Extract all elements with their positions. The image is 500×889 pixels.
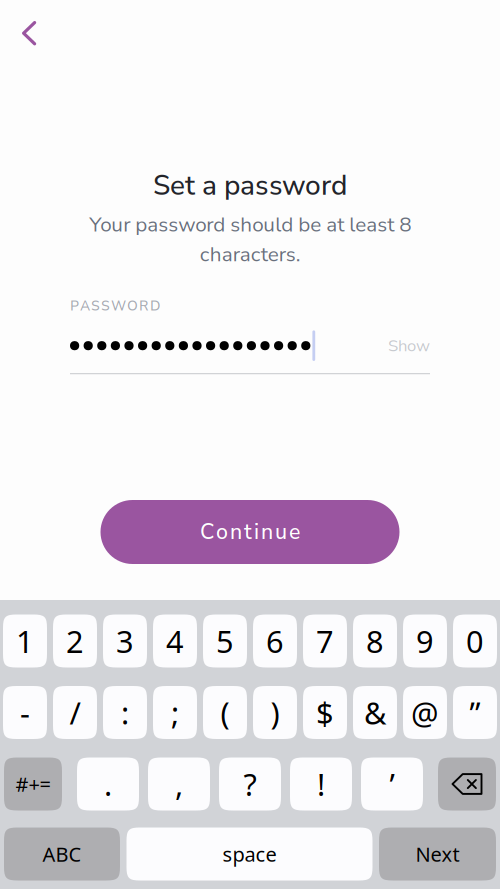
- staticText: ABC: [42, 840, 81, 868]
- button[interactable]: -: [3, 686, 47, 739]
- staticText: &: [364, 692, 386, 733]
- staticText: 5: [216, 620, 234, 662]
- button[interactable]: 4: [153, 614, 197, 667]
- staticText: #+=: [15, 770, 50, 798]
- button[interactable]: 2: [53, 614, 97, 667]
- button[interactable]: /: [53, 686, 97, 739]
- staticText: (: [220, 692, 229, 733]
- button[interactable]: space: [126, 827, 372, 880]
- button[interactable]: Delete: [438, 757, 496, 810]
- staticText: !: [317, 763, 325, 805]
- button[interactable]: (: [203, 686, 247, 739]
- staticText: 8: [366, 620, 384, 662]
- button[interactable]: #+=: [4, 757, 62, 810]
- button[interactable]: ABC: [4, 827, 120, 880]
- button[interactable]: 9: [403, 614, 447, 667]
- button[interactable]: ): [253, 686, 297, 739]
- staticText: ’: [389, 763, 394, 805]
- button[interactable]: 3: [103, 614, 147, 667]
- staticText: :: [121, 692, 129, 733]
- button[interactable]: ?: [219, 757, 281, 810]
- button[interactable]: Next: [379, 827, 496, 880]
- button[interactable]: &: [353, 686, 397, 739]
- staticText: 2: [66, 620, 84, 662]
- button[interactable]: 5: [203, 614, 247, 667]
- staticText: .: [104, 763, 112, 805]
- staticText: Your password should be at least 8 chara…: [89, 211, 411, 269]
- staticText: 1: [16, 620, 34, 662]
- button[interactable]: @: [403, 686, 447, 739]
- button[interactable]: Show: [364, 325, 430, 366]
- staticText: Next: [415, 840, 459, 868]
- button[interactable]: :: [103, 686, 147, 739]
- staticText: 7: [316, 620, 334, 662]
- staticText: space: [222, 840, 276, 868]
- staticText: ,: [175, 763, 183, 805]
- staticText: P A S S W O R D: [70, 297, 160, 315]
- button[interactable]: 7: [303, 614, 347, 667]
- button[interactable]: Back: [0, 8, 52, 58]
- button[interactable]: ;: [153, 686, 197, 739]
- staticText: 0: [466, 620, 484, 662]
- button[interactable]: 1: [3, 614, 47, 667]
- staticText: -: [20, 692, 30, 733]
- staticText: ;: [171, 692, 179, 733]
- button[interactable]: C o n t i n u e: [100, 500, 399, 564]
- staticText: /: [69, 692, 80, 733]
- button[interactable]: 8: [353, 614, 397, 667]
- staticText: 3: [116, 620, 134, 662]
- staticText: 6: [266, 620, 284, 662]
- staticText: 4: [166, 620, 184, 662]
- button[interactable]: ’: [361, 757, 423, 810]
- staticText: ?: [243, 763, 256, 805]
- staticText: C o n t i n u e: [200, 517, 300, 547]
- staticText: @: [411, 692, 439, 733]
- staticText: $: [316, 692, 334, 733]
- button[interactable]: ,: [148, 757, 210, 810]
- staticText: 9: [416, 620, 434, 662]
- staticText: ): [270, 692, 279, 733]
- button[interactable]: !: [290, 757, 352, 810]
- button[interactable]: 6: [253, 614, 297, 667]
- button[interactable]: .: [77, 757, 139, 810]
- button[interactable]: $: [303, 686, 347, 739]
- button[interactable]: 0: [453, 614, 497, 667]
- staticText: Show: [388, 334, 430, 357]
- staticText: ”: [469, 692, 480, 733]
- staticText: Set a password: [153, 166, 347, 205]
- button[interactable]: ”: [453, 686, 497, 739]
